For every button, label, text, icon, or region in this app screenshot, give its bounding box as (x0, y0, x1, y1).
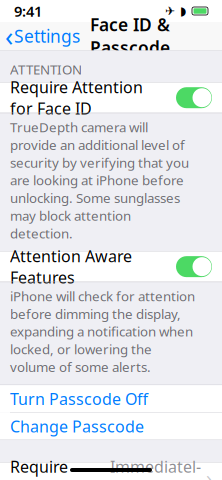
button[interactable]: Attention Aware Features (0, 252, 222, 282)
staticText: Immediately (110, 456, 201, 480)
staticText: Settings (14, 24, 80, 47)
staticText: Change Passcode (10, 416, 144, 437)
staticText: ✈ (165, 4, 175, 18)
staticText: iPhone will check for attention before d… (10, 287, 195, 376)
staticText: Turn Passcode Off (10, 388, 148, 409)
button[interactable]: Require Attention for Face ID (0, 83, 222, 113)
staticText: 9:41 (14, 1, 42, 21)
staticText: TrueDepth camera will provide an additio… (10, 118, 189, 242)
staticText: Face ID & Passcode (90, 13, 170, 59)
button[interactable]: ‹ (0, 22, 86, 50)
button[interactable]: Require Passcode (0, 463, 222, 480)
staticText: Require Passcode (10, 456, 82, 480)
staticText: ‹ (5, 18, 13, 54)
staticText: Require Attention for Face ID (10, 76, 143, 119)
staticText: › (206, 465, 212, 480)
button[interactable]: Turn Passcode Off (0, 385, 222, 412)
button[interactable]: Change Passcode (0, 413, 222, 440)
staticText: ◗ (180, 4, 186, 18)
staticText: Attention Aware Features (10, 245, 132, 288)
staticText: ATTENTION (10, 60, 82, 78)
